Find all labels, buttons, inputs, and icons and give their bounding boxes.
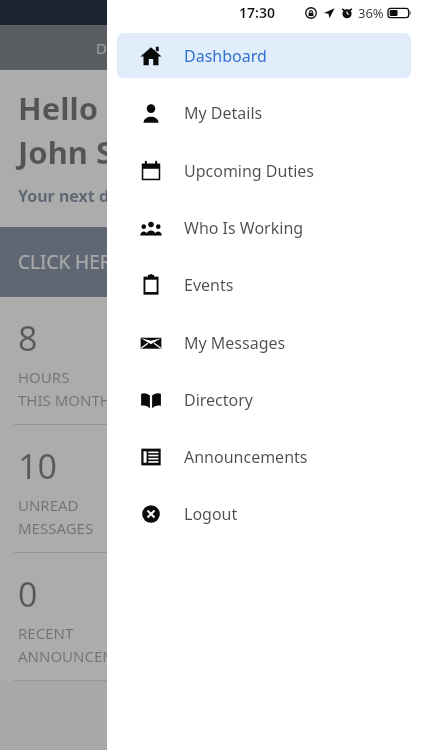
button[interactable]: Who Is Working [117,205,411,250]
button[interactable]: My Details [117,90,411,135]
button[interactable]: Logout [117,491,411,536]
staticText: Announcements [184,446,308,468]
staticText: Hello [18,87,99,129]
staticText: Logout [184,503,238,525]
button[interactable]: Directory [117,377,411,422]
staticText: RECENT [18,623,74,643]
staticText: CLICK HERE [18,249,123,275]
button[interactable]: CLICK HERE [0,227,422,297]
staticText: 8 [18,315,38,361]
button[interactable]: My Messages [117,320,411,365]
staticText: Events [184,274,234,296]
staticText: HOURS [18,367,70,387]
button[interactable]: Dashboard [117,33,411,78]
staticText: 0 [18,571,38,617]
staticText: Directory [184,389,254,411]
staticText: Who Is Working [184,217,304,239]
staticText: D [96,38,107,58]
staticText: ANNOUNCEMENTS [18,646,153,666]
button[interactable]: Announcements [117,434,411,479]
staticText: My Details [184,102,263,124]
staticText: THIS MONTH [18,390,111,410]
staticText: Dashboard [184,45,267,67]
staticText: John Smith [18,131,187,173]
button[interactable]: Events [117,262,411,307]
staticText: Your next duty [18,185,136,207]
button[interactable]: Upcoming Duties [117,148,411,193]
staticText: UNREAD [18,495,79,515]
staticText: 36% [358,4,384,22]
staticText: 10 [18,443,57,489]
staticText: Upcoming Duties [184,160,315,182]
staticText: MESSAGES [18,518,94,538]
staticText: My Messages [184,332,286,354]
staticText: 17:30 [239,3,275,22]
